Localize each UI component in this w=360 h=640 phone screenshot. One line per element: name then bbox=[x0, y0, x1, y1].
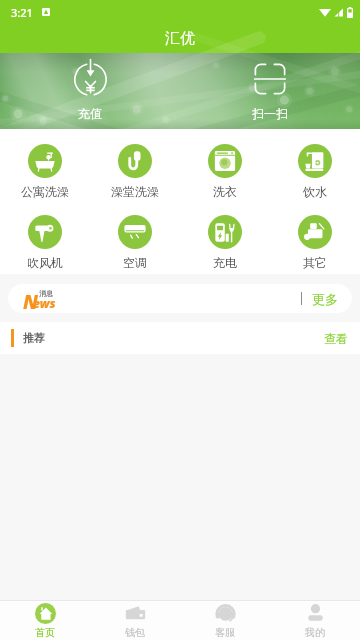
staticText: 澡堂洗澡 bbox=[111, 184, 159, 199]
button[interactable]: 充电 bbox=[180, 215, 270, 270]
staticText: 空调 bbox=[123, 255, 147, 270]
staticText: 汇优 bbox=[165, 29, 195, 48]
staticText: 首页 bbox=[35, 626, 55, 639]
button[interactable]: 我的 bbox=[270, 601, 360, 640]
button[interactable]: 钱包 bbox=[90, 601, 180, 640]
staticText: 饮水 bbox=[303, 184, 327, 199]
staticText: 客服 bbox=[215, 626, 235, 639]
staticText: 推荐 bbox=[23, 331, 45, 345]
staticText: 其它 bbox=[303, 255, 327, 270]
staticText: 充值 bbox=[78, 106, 102, 121]
staticText: 钱包 bbox=[125, 626, 145, 639]
button[interactable]: 查看 bbox=[324, 331, 348, 346]
button[interactable]: 首页 bbox=[0, 601, 90, 640]
staticText: 充电 bbox=[213, 255, 237, 270]
staticText: 我的 bbox=[305, 626, 325, 639]
staticText: 洗衣 bbox=[213, 184, 237, 199]
button[interactable]: 其它 bbox=[270, 215, 360, 270]
staticText: 更多 bbox=[312, 291, 338, 307]
button[interactable]: 客服 bbox=[180, 601, 270, 640]
button[interactable]: Recharge bbox=[47, 53, 133, 129]
button[interactable]: 饮水 bbox=[270, 144, 360, 199]
button[interactable]: 空调 bbox=[90, 215, 180, 270]
staticText: 公寓洗澡 bbox=[21, 184, 69, 199]
button[interactable]: 澡堂洗澡 bbox=[90, 144, 180, 199]
staticText: 吹风机 bbox=[27, 255, 63, 270]
staticText: 扫一扫 bbox=[252, 106, 288, 121]
staticText: 消息 bbox=[39, 289, 53, 298]
staticText: N bbox=[23, 289, 39, 309]
button[interactable]: 洗衣 bbox=[180, 144, 270, 199]
button[interactable]: N bbox=[8, 284, 352, 313]
staticText: ews bbox=[33, 295, 56, 311]
button[interactable]: 公寓洗澡 bbox=[0, 144, 90, 199]
button[interactable]: Scan bbox=[227, 53, 313, 129]
staticText: 3:21 bbox=[11, 5, 33, 20]
button[interactable]: 吹风机 bbox=[0, 215, 90, 270]
